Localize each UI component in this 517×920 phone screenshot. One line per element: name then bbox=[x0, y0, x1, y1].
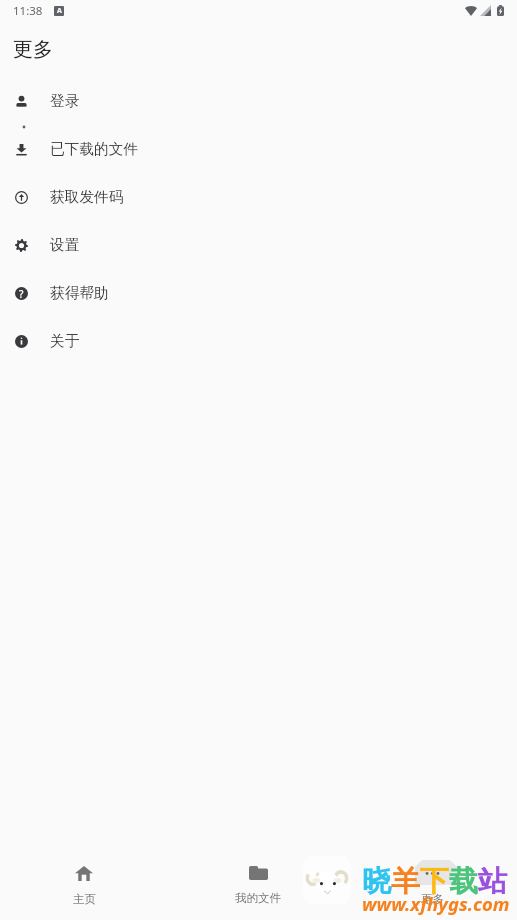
staticText: 关于 bbox=[50, 332, 80, 351]
staticText: 载 bbox=[449, 863, 478, 900]
button[interactable]: 设置 bbox=[0, 221, 517, 269]
staticText: 已下载的文件 bbox=[50, 140, 139, 159]
staticText: 设置 bbox=[50, 236, 80, 255]
staticText: 晓 bbox=[362, 863, 391, 900]
staticText: ? bbox=[19, 287, 24, 300]
button[interactable]: 主页 bbox=[44, 866, 124, 906]
button[interactable]: 关于 bbox=[0, 317, 517, 365]
staticText: 获取发件码 bbox=[50, 188, 124, 207]
staticText: 获得帮助 bbox=[50, 284, 109, 303]
staticText: 更多 bbox=[421, 892, 444, 906]
button[interactable]: 登录 bbox=[0, 77, 517, 125]
staticText: 主页 bbox=[73, 892, 96, 906]
staticText: www.xfhygs.com bbox=[362, 891, 510, 916]
button[interactable]: 我的文件 bbox=[218, 866, 298, 905]
staticText: 11:38 bbox=[13, 3, 43, 19]
button[interactable]: 已下载的文件 bbox=[0, 125, 517, 173]
staticText: 下 bbox=[420, 863, 449, 900]
staticText: 我的文件 bbox=[235, 891, 281, 905]
button[interactable]: 获取发件码 bbox=[0, 173, 517, 221]
button[interactable]: 更多 bbox=[392, 866, 472, 906]
staticText: A bbox=[57, 6, 62, 16]
button[interactable]: ? bbox=[0, 269, 517, 317]
staticText: 站 bbox=[478, 863, 507, 900]
staticText: 更多 bbox=[13, 37, 53, 62]
staticText: 羊 bbox=[391, 863, 420, 900]
staticText: 登录 bbox=[50, 92, 80, 111]
